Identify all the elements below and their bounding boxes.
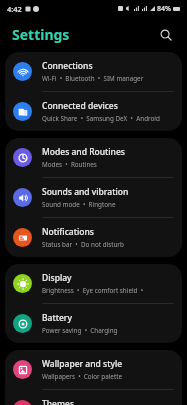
button[interactable]: Themes [5, 390, 182, 405]
staticText: Display [42, 272, 72, 284]
staticText: Connections [42, 60, 93, 72]
staticText: Settings [12, 25, 70, 44]
staticText: Sounds and vibration [42, 186, 129, 198]
staticText: Status bar • Do not disturb [42, 240, 124, 249]
staticText: Wallpapers • Color palette [42, 372, 123, 381]
staticText: Wallpaper and style [42, 358, 123, 370]
button[interactable]: Display [5, 264, 182, 303]
button[interactable]: Sounds and vibration [5, 178, 182, 217]
button[interactable]: Search settings [155, 24, 177, 46]
staticText: Sound mode • Ringtone [42, 200, 116, 209]
staticText: Quick Share • Samsung DeX • Android Auto [42, 114, 174, 123]
staticText: 84% [157, 4, 171, 14]
staticText: Power saving • Charging [42, 326, 118, 335]
button[interactable]: Connected devices [5, 92, 182, 131]
button[interactable]: Modes and Routines [5, 138, 182, 177]
staticText: Themes [42, 398, 75, 405]
staticText: Modes and Routines [42, 146, 125, 158]
button[interactable]: Battery [5, 304, 182, 343]
staticText: Modes • Routines [42, 160, 97, 169]
staticText: Battery [42, 312, 72, 324]
staticText: Wi-Fi • Bluetooth • SIM manager [42, 74, 144, 83]
staticText: Connected devices [42, 100, 118, 112]
staticText: Brightness • Eye comfort shield • Naviga… [42, 286, 174, 295]
button[interactable]: Wallpaper and style [5, 350, 182, 389]
button[interactable]: Connections [5, 52, 182, 91]
button[interactable]: Notifications [5, 218, 182, 257]
staticText: 4:42 [7, 4, 22, 14]
staticText: Notifications [42, 226, 94, 238]
